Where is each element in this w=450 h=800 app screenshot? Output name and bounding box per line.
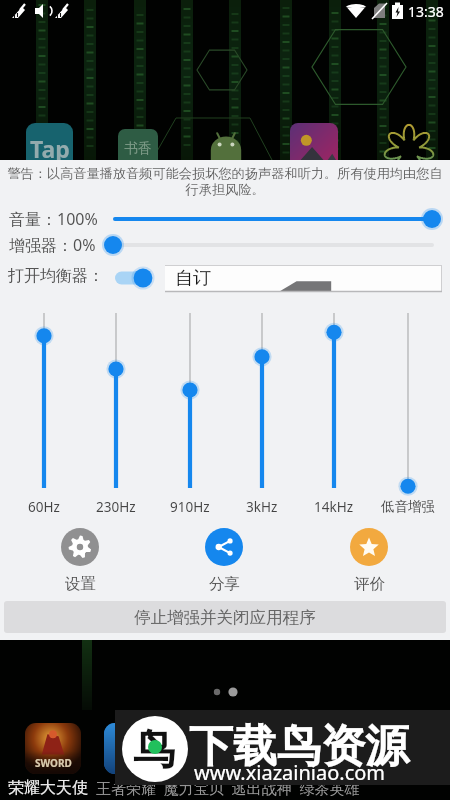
staticText: 打开均衡器： xyxy=(8,266,104,286)
button[interactable]: 评价 xyxy=(334,528,404,593)
button[interactable]: Game xyxy=(25,723,81,774)
staticText: 自订 xyxy=(175,267,211,290)
staticText: 鸟 xyxy=(133,724,175,777)
staticText: 停止增强并关闭应用程序 xyxy=(134,607,316,628)
button[interactable]: Slider xyxy=(106,208,441,230)
button[interactable]: 停止增强并关闭应用程序 xyxy=(4,601,446,633)
button[interactable]: Enable equalizer xyxy=(112,265,154,291)
staticText: 低音增强 xyxy=(381,498,435,515)
button[interactable]: 自订 xyxy=(165,265,442,292)
staticText: 910Hz xyxy=(170,498,210,516)
staticText: 60Hz xyxy=(28,498,60,516)
button[interactable]: Game 2 xyxy=(104,723,160,774)
staticText: 3kHz xyxy=(246,498,278,516)
staticText: 分享 xyxy=(209,574,240,593)
button[interactable]: Slider xyxy=(104,234,441,256)
button[interactable]: 书香 xyxy=(118,129,158,169)
button[interactable]: Gallery xyxy=(290,123,338,171)
button[interactable]: 设置 xyxy=(45,528,115,593)
staticText: 王者荣耀 魔力宝贝 逃出战神 绿茶英雄 xyxy=(96,778,360,798)
button[interactable]: Tap xyxy=(26,123,73,170)
staticText: 书香 xyxy=(124,140,152,158)
staticText: 设置 xyxy=(65,574,96,593)
staticText: 13:38 xyxy=(408,2,444,21)
staticText: 230Hz xyxy=(96,498,136,516)
staticText: 警告：以高音量播放音频可能会损坏您的扬声器和听力。所有使用均由您自行承担风险。 xyxy=(5,165,445,198)
staticText: 14kHz xyxy=(314,498,354,516)
staticText: 评价 xyxy=(354,574,385,593)
staticText: 音量：100% xyxy=(9,208,98,230)
button[interactable]: Theme xyxy=(382,120,436,174)
staticText: 增强器：0% xyxy=(9,234,96,256)
staticText: www.xiazainiao.com xyxy=(194,759,386,786)
staticText: Tap xyxy=(30,133,70,164)
button[interactable]: Android xyxy=(206,126,246,166)
staticText: 荣耀大天使 xyxy=(8,778,88,798)
staticText: SWORD xyxy=(35,756,72,770)
staticText: 下载鸟资源 xyxy=(189,719,409,774)
button[interactable]: 分享 xyxy=(189,528,259,593)
